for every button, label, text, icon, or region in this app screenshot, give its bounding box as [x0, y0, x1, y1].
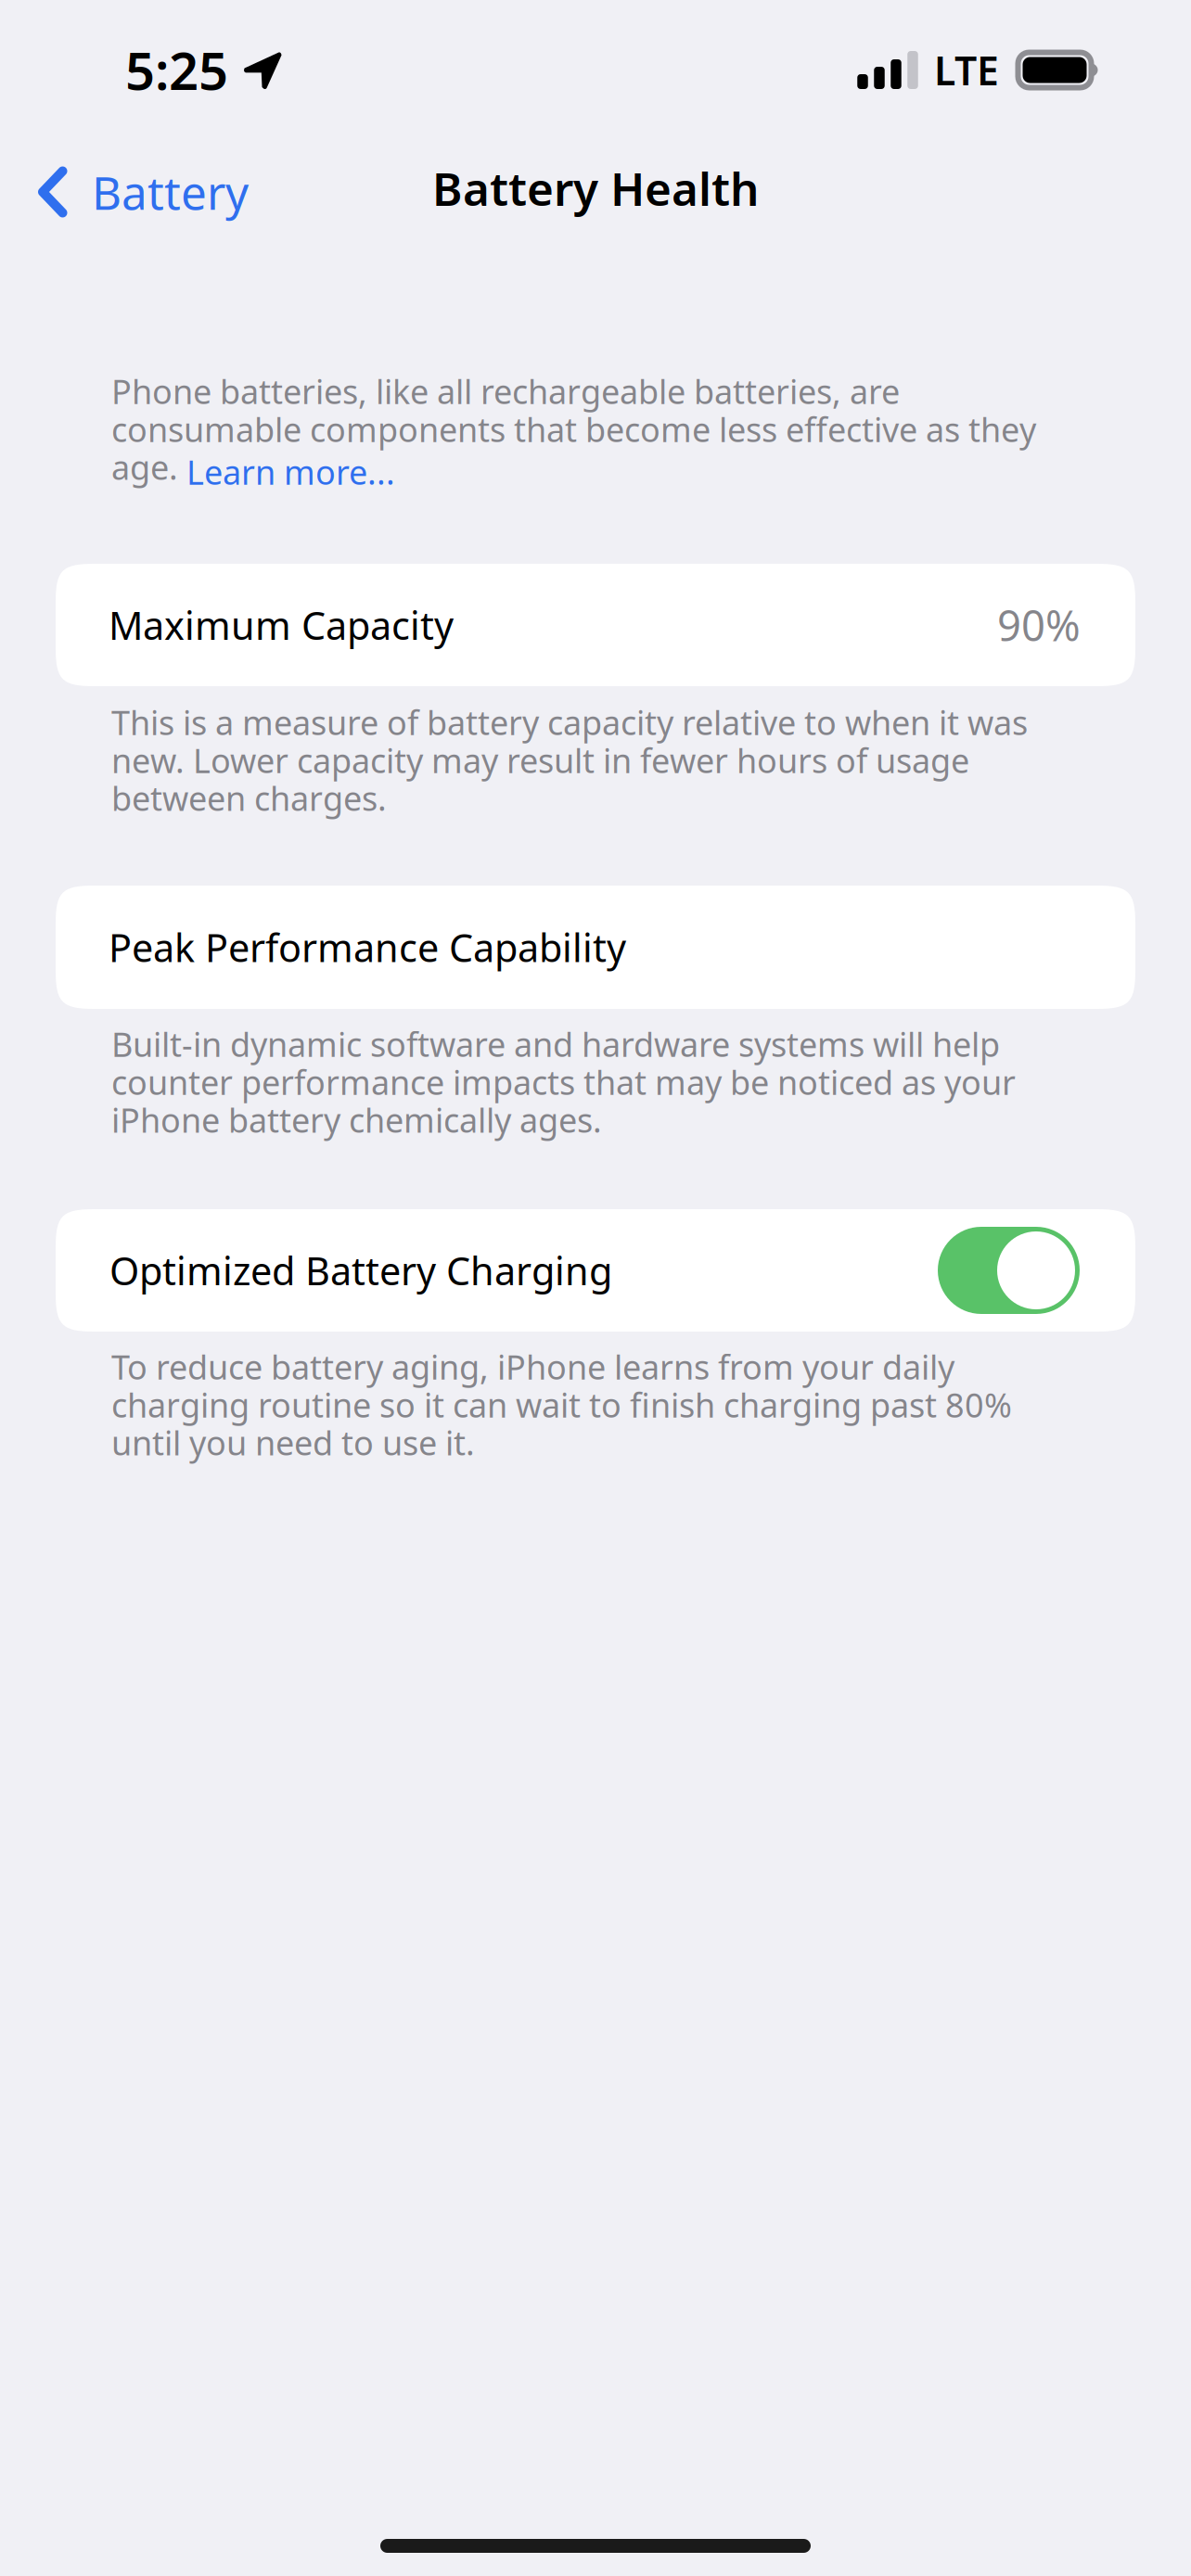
staticText: This is a measure of battery capacity re… — [111, 700, 1028, 820]
button[interactable]: Learn more... — [0, 0, 209, 55]
button[interactable]: Optimized Battery Charging, on — [0, 0, 1080, 122]
staticText: Phone batteries, like all rechargeable b… — [111, 369, 1036, 489]
staticText: Optimized Battery Charging — [109, 1245, 612, 1296]
staticText: Peak Performance Capability — [109, 922, 626, 973]
staticText: To reduce battery aging, iPhone learns f… — [111, 1345, 1012, 1465]
staticText: Battery Health — [432, 158, 759, 218]
staticText: Battery — [92, 162, 249, 222]
staticText: Learn more... — [186, 450, 395, 494]
button[interactable]: Peak Performance Capability — [0, 0, 1080, 123]
staticText: 5:25 — [125, 35, 228, 104]
staticText: 90% — [997, 597, 1081, 653]
button[interactable]: Back to Battery — [0, 141, 271, 243]
staticText: Built-in dynamic software and hardware s… — [111, 1022, 1016, 1142]
staticText: Maximum Capacity — [109, 600, 454, 650]
staticText: LTE — [934, 44, 999, 96]
